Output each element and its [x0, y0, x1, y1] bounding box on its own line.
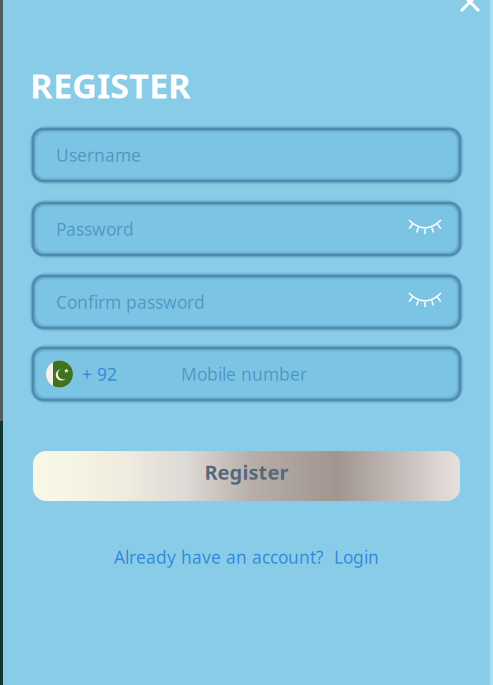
staticText: Password	[56, 217, 134, 240]
button[interactable]: Confirm password	[0, 276, 493, 328]
staticText: Register	[204, 459, 288, 485]
button[interactable]: Already have an account? Login	[0, 544, 493, 570]
button[interactable]: Username	[0, 129, 493, 181]
staticText: Already have an account? Login	[114, 545, 379, 568]
button[interactable]: Register	[33, 451, 460, 501]
staticText: Mobile number	[181, 362, 307, 385]
staticText: + 92	[82, 362, 117, 385]
staticText: REGISTER	[30, 62, 191, 108]
button[interactable]: Password	[0, 203, 493, 255]
button[interactable]: Close	[447, 0, 493, 30]
staticText: Username	[56, 143, 141, 166]
staticText: Confirm password	[56, 290, 205, 313]
button[interactable]: + 92	[0, 348, 493, 400]
